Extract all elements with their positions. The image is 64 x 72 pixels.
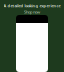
staticText: Shop now <box>24 9 40 15</box>
staticText: A detailed looking experience <box>3 3 60 8</box>
